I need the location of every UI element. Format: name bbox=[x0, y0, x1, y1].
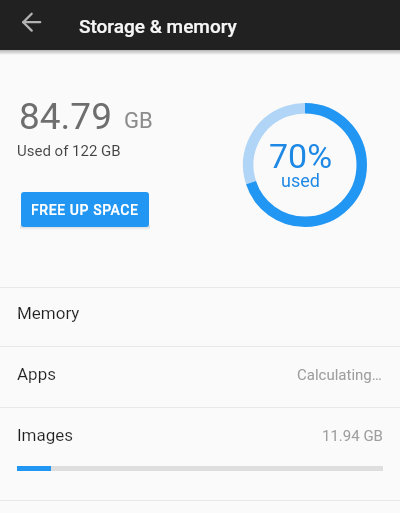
staticText: used bbox=[281, 170, 320, 191]
button[interactable] bbox=[0, 347, 400, 407]
button[interactable]: FREE UP SPACE bbox=[21, 192, 149, 227]
staticText: FREE UP SPACE bbox=[31, 202, 139, 218]
button[interactable] bbox=[0, 408, 400, 500]
staticText: Apps bbox=[17, 364, 56, 384]
button[interactable] bbox=[14, 4, 50, 40]
staticText: Storage & memory bbox=[79, 15, 237, 37]
button[interactable] bbox=[0, 288, 400, 346]
staticText: Calculating… bbox=[297, 366, 382, 384]
staticText: 11.94 GB bbox=[322, 427, 383, 445]
staticText: Images bbox=[17, 425, 74, 445]
staticText: 70% bbox=[269, 136, 333, 176]
staticText: GB bbox=[124, 108, 153, 134]
staticText: 84.79 bbox=[19, 95, 112, 138]
staticText: Memory bbox=[17, 303, 80, 323]
staticText: Used of 122 GB bbox=[17, 142, 121, 160]
